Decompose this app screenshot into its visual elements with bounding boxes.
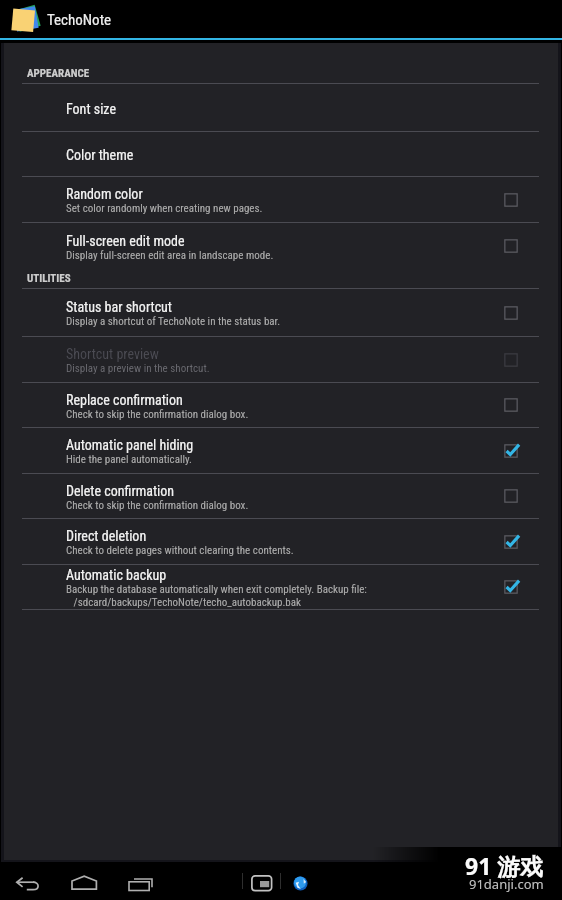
button[interactable]: Browser bbox=[281, 862, 319, 900]
button[interactable]: Recent apps bbox=[119, 862, 163, 900]
button[interactable]: Random color bbox=[4, 177, 558, 222]
staticText: UTILITIES bbox=[27, 272, 71, 285]
button[interactable]: Screenshot bbox=[243, 862, 280, 900]
staticText: Display a preview in the shortcut. bbox=[66, 362, 210, 375]
staticText: Shortcut preview bbox=[66, 346, 159, 362]
staticText: Font size bbox=[66, 101, 116, 117]
staticText: Set color randomly when creating new pag… bbox=[66, 202, 263, 215]
staticText: Display full-screen edit area in landsca… bbox=[66, 249, 274, 262]
button[interactable]: Automatic panel hiding bbox=[4, 428, 558, 473]
staticText: Automatic panel hiding bbox=[66, 437, 194, 453]
button[interactable]: Full-screen edit mode bbox=[4, 223, 558, 269]
staticText: Random color bbox=[66, 186, 143, 202]
staticText: Hide the panel automatically. bbox=[66, 453, 192, 466]
staticText: Backup the database automatically when e… bbox=[66, 583, 367, 596]
button[interactable]: Replace confirmation bbox=[4, 383, 558, 427]
staticText: APPEARANCE bbox=[27, 67, 90, 80]
staticText: 91 游戏 bbox=[465, 850, 544, 881]
staticText: Full-screen edit mode bbox=[66, 233, 185, 249]
button[interactable]: Font size bbox=[4, 84, 558, 131]
staticText: Status bar shortcut bbox=[66, 299, 173, 315]
staticText: Check to delete pages without clearing t… bbox=[66, 544, 294, 557]
button[interactable]: Direct deletion bbox=[4, 519, 558, 564]
staticText: Display a shortcut of TechoNote in the s… bbox=[66, 315, 281, 328]
staticText: Delete confirmation bbox=[66, 483, 175, 499]
button[interactable]: Shortcut preview bbox=[4, 337, 558, 382]
button[interactable]: Color theme bbox=[4, 132, 558, 176]
staticText: Automatic backup bbox=[66, 567, 167, 583]
staticText: Check to skip the confirmation dialog bo… bbox=[66, 408, 249, 421]
staticText: Check to skip the confirmation dialog bo… bbox=[66, 499, 249, 512]
staticText: /sdcard/backups/TechoNote/techo_autoback… bbox=[66, 596, 301, 609]
staticText: TechoNote bbox=[47, 11, 112, 29]
button[interactable]: Status bar shortcut bbox=[4, 289, 558, 336]
button[interactable]: Delete confirmation bbox=[4, 474, 558, 518]
button[interactable]: Home bbox=[62, 862, 106, 900]
button[interactable]: Back bbox=[6, 862, 50, 900]
staticText: 91danji.com bbox=[469, 875, 544, 893]
staticText: Direct deletion bbox=[66, 528, 147, 544]
staticText: Replace confirmation bbox=[66, 392, 183, 408]
button[interactable]: Automatic backup bbox=[4, 565, 558, 609]
staticText: Color theme bbox=[66, 147, 134, 163]
